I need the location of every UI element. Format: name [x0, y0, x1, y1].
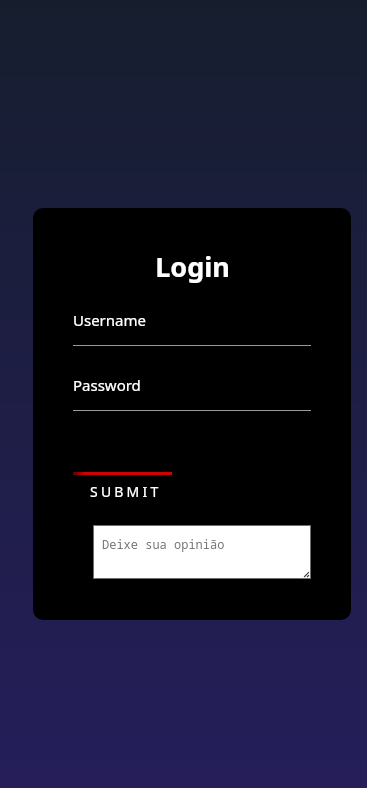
staticText: SUBMIT	[90, 482, 162, 501]
staticText: Login	[155, 248, 230, 285]
staticText: Password	[73, 375, 141, 395]
button[interactable]: Deixe sua opinião	[93, 525, 311, 579]
button[interactable]: Username	[73, 310, 311, 346]
staticText: Deixe sua opinião	[102, 536, 225, 552]
staticText: Username	[73, 310, 146, 330]
button[interactable]: Password	[73, 375, 311, 411]
button[interactable]: SUBMIT	[73, 478, 219, 504]
